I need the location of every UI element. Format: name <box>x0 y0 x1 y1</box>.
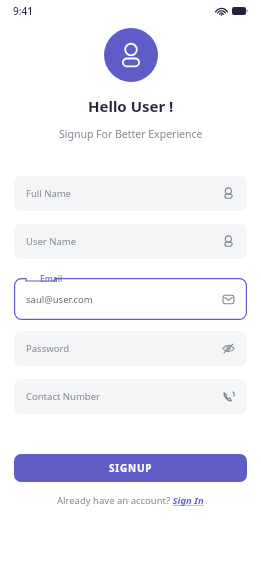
button[interactable]: SIGNUP <box>14 454 247 482</box>
other: Email <box>222 293 235 306</box>
staticText: Hello User ! <box>88 96 174 116</box>
staticText: saul@user.com <box>26 293 93 306</box>
button[interactable]: Already have an account? Sign In <box>0 494 261 507</box>
button[interactable]: Contact Number <box>14 379 247 414</box>
staticText: Password <box>26 342 69 355</box>
staticText: Full Name <box>26 187 71 200</box>
other: Person <box>222 235 235 248</box>
staticText: Already have an account? Sign In <box>57 494 204 507</box>
staticText: Email <box>40 273 63 285</box>
other: Person <box>222 187 235 200</box>
other: Phone <box>222 390 235 403</box>
staticText: User Name <box>26 235 77 248</box>
staticText: Contact Number <box>26 390 100 403</box>
button[interactable]: saul@user.com <box>14 278 247 320</box>
other: Toggle password visibility <box>222 342 235 355</box>
staticText: Signup For Better Experience <box>59 127 203 141</box>
staticText: 9:41 <box>13 4 33 18</box>
button[interactable]: Full Name <box>14 176 247 211</box>
button[interactable]: Password <box>14 331 247 366</box>
staticText: SIGNUP <box>109 461 153 475</box>
button[interactable]: Profile avatar <box>104 28 158 82</box>
button[interactable]: User Name <box>14 224 247 259</box>
